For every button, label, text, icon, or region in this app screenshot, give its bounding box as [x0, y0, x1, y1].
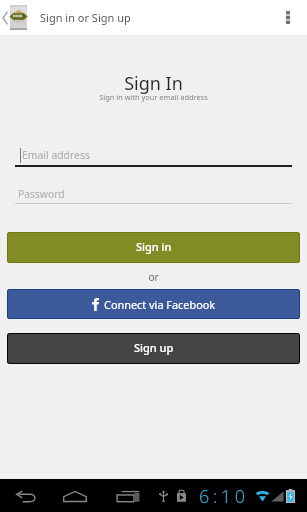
button[interactable]: Connect via Facebook — [7, 289, 300, 319]
button[interactable]: Sign up — [7, 333, 300, 364]
button[interactable]: Back — [14, 486, 38, 506]
button[interactable]: Email address — [20, 143, 292, 165]
button[interactable]: Recent apps — [115, 486, 141, 506]
staticText: Sign up — [134, 340, 174, 355]
button[interactable]: More options — [277, 0, 299, 35]
staticText: Connect via Facebook — [104, 297, 216, 312]
staticText: Sign in with your email address — [0, 92, 307, 102]
staticText: 6:10 — [199, 484, 249, 509]
staticText: or — [0, 270, 307, 284]
button[interactable]: Home — [63, 486, 87, 506]
staticText: Sign in — [136, 239, 172, 254]
staticText: Sign In — [0, 71, 307, 96]
button[interactable]: Password — [15, 184, 292, 205]
button[interactable]: Navigate up — [0, 0, 27, 35]
staticText: Email address — [22, 148, 90, 162]
staticText: Sign in or Sign up — [40, 10, 131, 25]
staticText: Password — [18, 187, 65, 201]
button[interactable]: Sign in — [7, 232, 300, 263]
